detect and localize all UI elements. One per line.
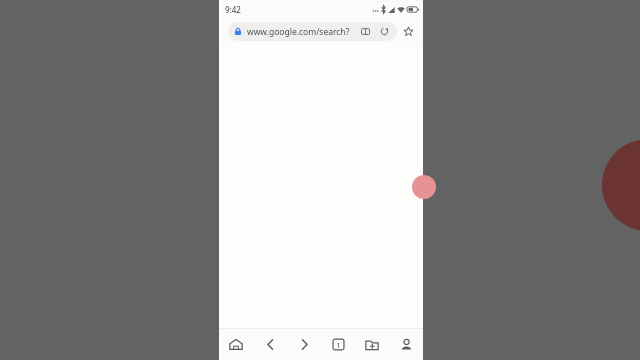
button[interactable]: Reader mode [356,22,375,41]
button[interactable]: Tabs [321,329,355,360]
button[interactable]: Reload [375,22,394,41]
button[interactable]: www.google.com/search?hl= [228,22,397,41]
button[interactable]: Home [219,329,253,360]
button[interactable]: Add to collection [355,329,389,360]
button[interactable]: Back [253,329,287,360]
button[interactable]: Forward [287,329,321,360]
staticText: www.google.com/search?hl= [247,26,354,38]
button[interactable]: Account [389,329,423,360]
button[interactable]: Bookmark [397,20,419,42]
staticText: 1 [336,340,341,350]
staticText: 9:42 [225,4,241,15]
